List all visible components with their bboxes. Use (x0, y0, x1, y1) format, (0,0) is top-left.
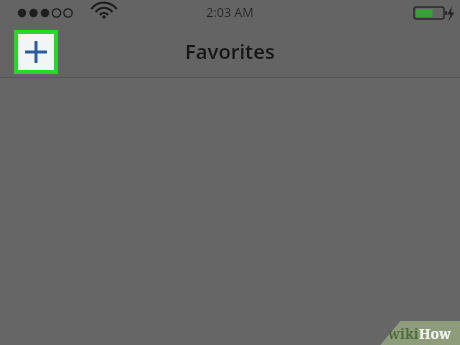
staticText: wiki (388, 324, 419, 343)
staticText: Favorites (185, 38, 275, 65)
button[interactable]: Add (18, 34, 54, 70)
staticText: 2:03 AM (206, 4, 254, 21)
staticText: How (419, 324, 452, 343)
